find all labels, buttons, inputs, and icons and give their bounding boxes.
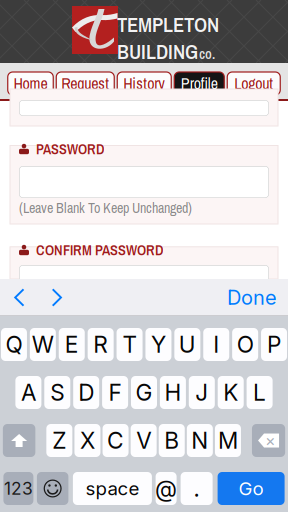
staticText: (Leave Blank To Keep Unchanged): [19, 199, 192, 217]
button[interactable]: X: [74, 424, 100, 457]
staticText: V: [136, 427, 151, 454]
button[interactable]: @: [156, 472, 177, 505]
staticText: G: [135, 379, 152, 406]
staticText: TEMPLETON: [117, 11, 219, 38]
button[interactable]: M: [215, 424, 241, 457]
staticText: Go: [239, 477, 264, 500]
button[interactable]: Shift: [3, 424, 35, 457]
staticText: T: [122, 331, 136, 358]
button[interactable]: P: [261, 328, 287, 361]
staticText: I: [213, 331, 219, 358]
button[interactable]: B: [159, 424, 185, 457]
button[interactable]: H: [160, 376, 186, 409]
staticText: A: [21, 379, 36, 406]
staticText: Logout: [234, 73, 273, 94]
staticText: CONFIRM PASSWORD: [36, 240, 164, 260]
button[interactable]: N: [187, 424, 213, 457]
button[interactable]: I: [203, 328, 229, 361]
button[interactable]: Logout: [227, 72, 280, 95]
button[interactable]: space: [73, 472, 152, 505]
button[interactable]: Emoji: [37, 472, 68, 505]
staticText: BUILDING: [117, 37, 198, 65]
staticText: Profile: [181, 73, 218, 94]
staticText: ×: [265, 431, 276, 450]
button[interactable]: Z: [46, 424, 72, 457]
button[interactable]: 123: [3, 472, 33, 505]
button[interactable]: S: [44, 376, 70, 409]
staticText: U: [179, 331, 196, 358]
button[interactable]: Next field: [38, 279, 76, 316]
button[interactable]: A: [15, 376, 41, 409]
staticText: Home: [13, 73, 47, 94]
button[interactable]: D: [73, 376, 99, 409]
staticText: O: [237, 331, 254, 358]
button[interactable]: Done: [223, 279, 281, 316]
staticText: H: [164, 379, 181, 406]
staticText: 123: [4, 478, 33, 499]
staticText: M: [218, 427, 238, 454]
button[interactable]: Q: [1, 328, 27, 361]
staticText: .: [194, 475, 200, 502]
staticText: space: [85, 477, 139, 500]
staticText: W: [32, 331, 54, 358]
button[interactable]: J: [189, 376, 215, 409]
button[interactable]: R: [88, 328, 114, 361]
staticText: F: [109, 379, 122, 406]
staticText: Y: [151, 331, 166, 358]
button[interactable]: Home: [8, 72, 53, 95]
button[interactable]: History: [117, 72, 171, 95]
button[interactable]: E: [59, 328, 85, 361]
button[interactable]: Delete: [252, 424, 285, 457]
button[interactable]: Go: [218, 472, 285, 505]
staticText: J: [195, 379, 208, 406]
staticText: Done: [227, 285, 277, 310]
button[interactable]: Request: [56, 72, 114, 95]
staticText: Request: [61, 73, 109, 94]
button[interactable]: F: [102, 376, 128, 409]
button[interactable]: Y: [145, 328, 171, 361]
button[interactable]: L: [247, 376, 273, 409]
staticText: X: [80, 427, 95, 454]
staticText: @: [155, 475, 177, 502]
staticText: D: [78, 379, 94, 406]
button[interactable]: T: [116, 328, 142, 361]
button[interactable]: C: [102, 424, 128, 457]
staticText: R: [93, 331, 108, 358]
button[interactable]: U: [174, 328, 200, 361]
staticText: Z: [52, 427, 66, 454]
staticText: B: [164, 427, 179, 454]
staticText: P: [267, 331, 281, 358]
staticText: co.: [199, 44, 215, 63]
staticText: N: [191, 427, 208, 454]
button[interactable]: Previous field: [0, 279, 38, 316]
staticText: C: [107, 427, 124, 454]
button[interactable]: O: [232, 328, 258, 361]
staticText: PASSWORD: [36, 139, 105, 159]
button[interactable]: V: [131, 424, 157, 457]
staticText: E: [65, 331, 79, 358]
button[interactable]: Profile: [174, 72, 224, 95]
button[interactable]: .: [181, 472, 213, 505]
button[interactable]: W: [30, 328, 56, 361]
staticText: S: [50, 379, 64, 406]
button[interactable]: G: [131, 376, 157, 409]
staticText: K: [223, 379, 238, 406]
staticText: History: [123, 73, 165, 94]
button[interactable]: K: [218, 376, 244, 409]
staticText: L: [253, 379, 266, 406]
staticText: Q: [5, 331, 22, 358]
